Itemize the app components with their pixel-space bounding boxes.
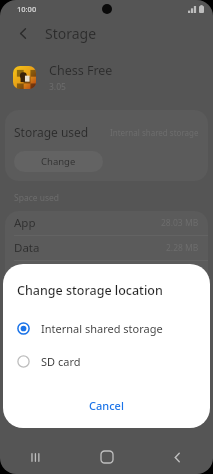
- staticText: Storage: [45, 24, 97, 43]
- staticText: Internal shared storage: [110, 127, 199, 138]
- staticText: Data: [14, 240, 40, 256]
- button[interactable]: Back: [12, 22, 34, 44]
- button[interactable]: Recent apps: [0, 440, 71, 474]
- button[interactable]: Clear cache: [118, 320, 179, 344]
- staticText: Internal shared storage: [41, 321, 163, 336]
- staticText: Space used: [14, 192, 60, 204]
- staticText: 10:00: [17, 4, 37, 14]
- staticText: App: [14, 215, 36, 231]
- button[interactable]: Total: [5, 285, 208, 310]
- button[interactable]: Cache: [5, 260, 208, 285]
- button[interactable]: Data: [5, 235, 208, 260]
- button[interactable]: Clear data: [34, 320, 90, 344]
- staticText: Clear data: [40, 326, 84, 338]
- button[interactable]: Cancel: [3, 393, 210, 417]
- staticText: Cache: [14, 265, 47, 281]
- staticText: 2.28 MB: [166, 242, 199, 254]
- staticText: Change: [41, 155, 76, 168]
- staticText: Total: [14, 290, 41, 306]
- staticText: 30.65 MB: [161, 292, 199, 304]
- button[interactable]: Back: [142, 440, 213, 474]
- button[interactable]: App: [5, 211, 208, 235]
- button[interactable]: Internal shared storage: [3, 316, 210, 340]
- staticText: 3.05: [49, 81, 66, 93]
- staticText: SD card: [41, 354, 81, 369]
- staticText: Cancel: [89, 398, 124, 413]
- staticText: Storage used: [14, 124, 89, 140]
- button[interactable]: Home: [71, 440, 142, 474]
- staticText: Chess Free: [49, 62, 113, 79]
- staticText: Clear cache: [124, 326, 173, 338]
- staticText: 28.03 MB: [161, 217, 199, 229]
- staticText: Change storage location: [17, 282, 163, 299]
- button[interactable]: Change: [14, 151, 103, 172]
- button[interactable]: SD card: [3, 349, 210, 373]
